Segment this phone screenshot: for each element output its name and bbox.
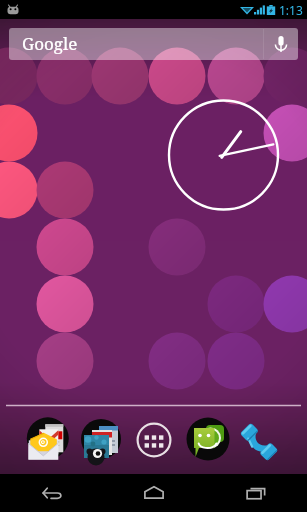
button[interactable]: Apps — [124, 410, 184, 470]
button[interactable]: Voice search — [264, 28, 298, 60]
other: Messaging folder — [178, 409, 238, 469]
other: Phone — [238, 417, 284, 463]
other: Games folder — [71, 409, 131, 469]
button[interactable]: Google — [9, 28, 298, 60]
button[interactable]: Recent apps — [205, 474, 307, 512]
button[interactable]: Mail folder — [17, 408, 77, 468]
staticText: Google — [22, 32, 78, 55]
button[interactable]: Back — [0, 474, 103, 512]
button[interactable]: Phone — [231, 410, 291, 470]
button[interactable]: Games folder — [71, 409, 131, 469]
staticText: 1:13 — [279, 2, 303, 18]
button[interactable]: Messaging folder — [178, 409, 238, 469]
other: Apps — [130, 416, 178, 464]
other: Mail folder — [17, 408, 77, 468]
button[interactable]: Home — [103, 474, 205, 512]
